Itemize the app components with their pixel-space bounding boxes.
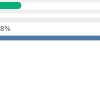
button[interactable]: Continue bbox=[0, 35, 100, 41]
staticText: 8% bbox=[0, 23, 11, 33]
button[interactable]: List item two bbox=[0, 17, 100, 23]
button[interactable]: List item one bbox=[0, 9, 100, 14]
button[interactable]: Download progress bbox=[0, 2, 100, 9]
